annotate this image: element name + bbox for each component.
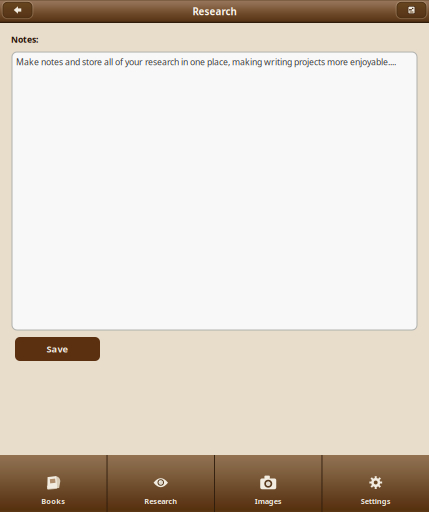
button[interactable]: Save note: [397, 2, 426, 18]
staticText: Research: [144, 496, 177, 506]
staticText: Save: [46, 343, 68, 355]
staticText: Notes:: [11, 34, 38, 45]
staticText: Research: [192, 5, 236, 18]
button[interactable]: Save: [15, 337, 100, 361]
button[interactable]: Research: [107, 455, 214, 512]
button[interactable]: Images: [215, 455, 322, 512]
button[interactable]: Settings: [322, 455, 429, 512]
staticText: Settings: [361, 496, 391, 506]
staticText: Books: [41, 496, 65, 506]
button[interactable]: Books: [0, 455, 107, 512]
staticText: Make notes and store all of your researc…: [16, 56, 396, 68]
staticText: Images: [255, 496, 282, 506]
button[interactable]: Back: [3, 2, 32, 18]
